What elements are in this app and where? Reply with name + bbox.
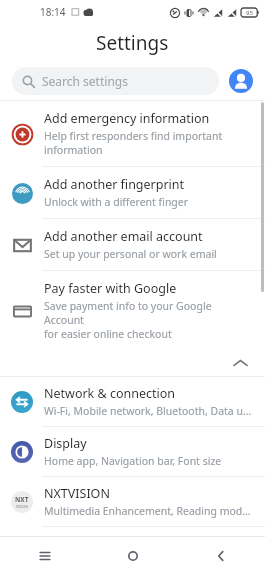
- staticText: Multimedia Enhancement, Reading mode, S…: [44, 504, 253, 518]
- button[interactable]: Recents: [0, 537, 89, 575]
- button[interactable]: Display: [0, 427, 265, 476]
- staticText: VISION: [16, 504, 28, 509]
- staticText: Add another email account: [44, 228, 203, 245]
- button[interactable]: Home: [89, 537, 177, 575]
- staticText: Wi-Fi, Mobile network, Bluetooth, Data u…: [44, 404, 253, 418]
- button[interactable]: Pay faster with Google: [0, 271, 265, 350]
- staticText: Unlock with a different finger: [44, 195, 189, 209]
- staticText: Set up your personal or work email: [44, 247, 217, 261]
- button[interactable]: Add emergency information: [0, 101, 265, 166]
- button[interactable]: Add another email account: [0, 219, 265, 270]
- staticText: Home app, Navigation bar, Font size: [44, 454, 222, 468]
- staticText: Settings: [96, 30, 169, 56]
- button[interactable]: Search settings: [12, 67, 219, 95]
- button[interactable]: Account: [229, 69, 253, 93]
- staticText: 95: [246, 9, 253, 17]
- staticText: NXTVISION: [44, 485, 110, 502]
- staticText: NXT: [15, 495, 29, 504]
- staticText: Add emergency information: [44, 110, 210, 127]
- staticText: Search settings: [42, 73, 128, 89]
- staticText: Help first responders find important inf…: [44, 129, 223, 157]
- button[interactable]: NXT: [0, 477, 265, 526]
- staticText: Display: [44, 435, 87, 452]
- staticText: Add another fingerprint: [44, 176, 185, 193]
- button[interactable]: Back: [177, 537, 265, 575]
- staticText: Pay faster with Google: [44, 280, 177, 297]
- staticText: Save payment info to your Google Account…: [44, 299, 253, 341]
- button[interactable]: Collapse suggestions: [0, 350, 265, 376]
- staticText: 18:14: [40, 5, 66, 19]
- button[interactable]: Add another fingerprint: [0, 167, 265, 218]
- staticText: Network & connection: [44, 385, 176, 402]
- button[interactable]: Network & connection: [0, 377, 265, 426]
